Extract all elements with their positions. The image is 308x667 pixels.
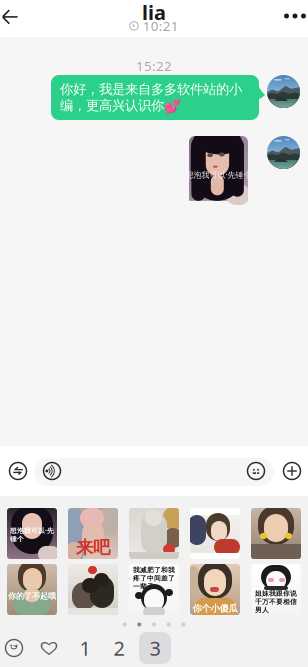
button[interactable] [129, 508, 179, 559]
button[interactable]: 1 [69, 632, 101, 664]
button[interactable]: 你的了不起哦 [7, 564, 57, 615]
button[interactable]: Emoji keyboard [0, 630, 30, 666]
staticText: 想泡我可以·先锤个 [10, 526, 54, 543]
button[interactable]: Voice message [37, 451, 67, 491]
staticText: 来吧 [76, 537, 110, 558]
staticText: 想泡我可以·先锤个 [185, 169, 251, 180]
button[interactable] [251, 508, 301, 559]
button[interactable] [190, 508, 240, 559]
staticText: 你好，我是来自多多软件站的小编，更高兴认识你💕 [60, 81, 242, 114]
staticText: 10:21 [143, 17, 179, 35]
button[interactable]: Emoji keyboard [241, 451, 271, 491]
button[interactable] [68, 564, 118, 615]
staticText: 2 [113, 635, 124, 661]
button[interactable]: 想泡我可以·先锤个 [7, 508, 57, 559]
staticText: 我减肥了和我疼了中间差了一辈子 [133, 566, 175, 591]
button[interactable]: Back [0, 0, 30, 35]
staticText: 3 [149, 635, 160, 661]
staticText: 姐妹我跟你说千万不要相信男人 [255, 589, 297, 614]
button[interactable]: 姐妹我跟你说千万不要相信男人 [251, 564, 301, 615]
button[interactable]: More actions [275, 446, 308, 496]
staticText: 1 [79, 635, 90, 661]
button[interactable]: 3 [139, 632, 171, 664]
staticText: lia [142, 0, 166, 26]
button[interactable]: 你个小傻瓜 [190, 564, 240, 615]
staticText: 你的了不起哦 [8, 591, 56, 601]
button[interactable]: Favourite stickers [33, 630, 65, 666]
staticText: 你个小傻瓜 [192, 602, 237, 614]
button[interactable]: 我减肥了和我疼了中间差了一辈子 [129, 564, 179, 615]
staticText: 15:22 [136, 57, 172, 75]
button[interactable]: Switch to voice input [1, 446, 35, 496]
button[interactable]: More options [277, 0, 308, 34]
button[interactable]: 2 [103, 632, 135, 664]
button[interactable]: 来吧 [68, 508, 118, 559]
